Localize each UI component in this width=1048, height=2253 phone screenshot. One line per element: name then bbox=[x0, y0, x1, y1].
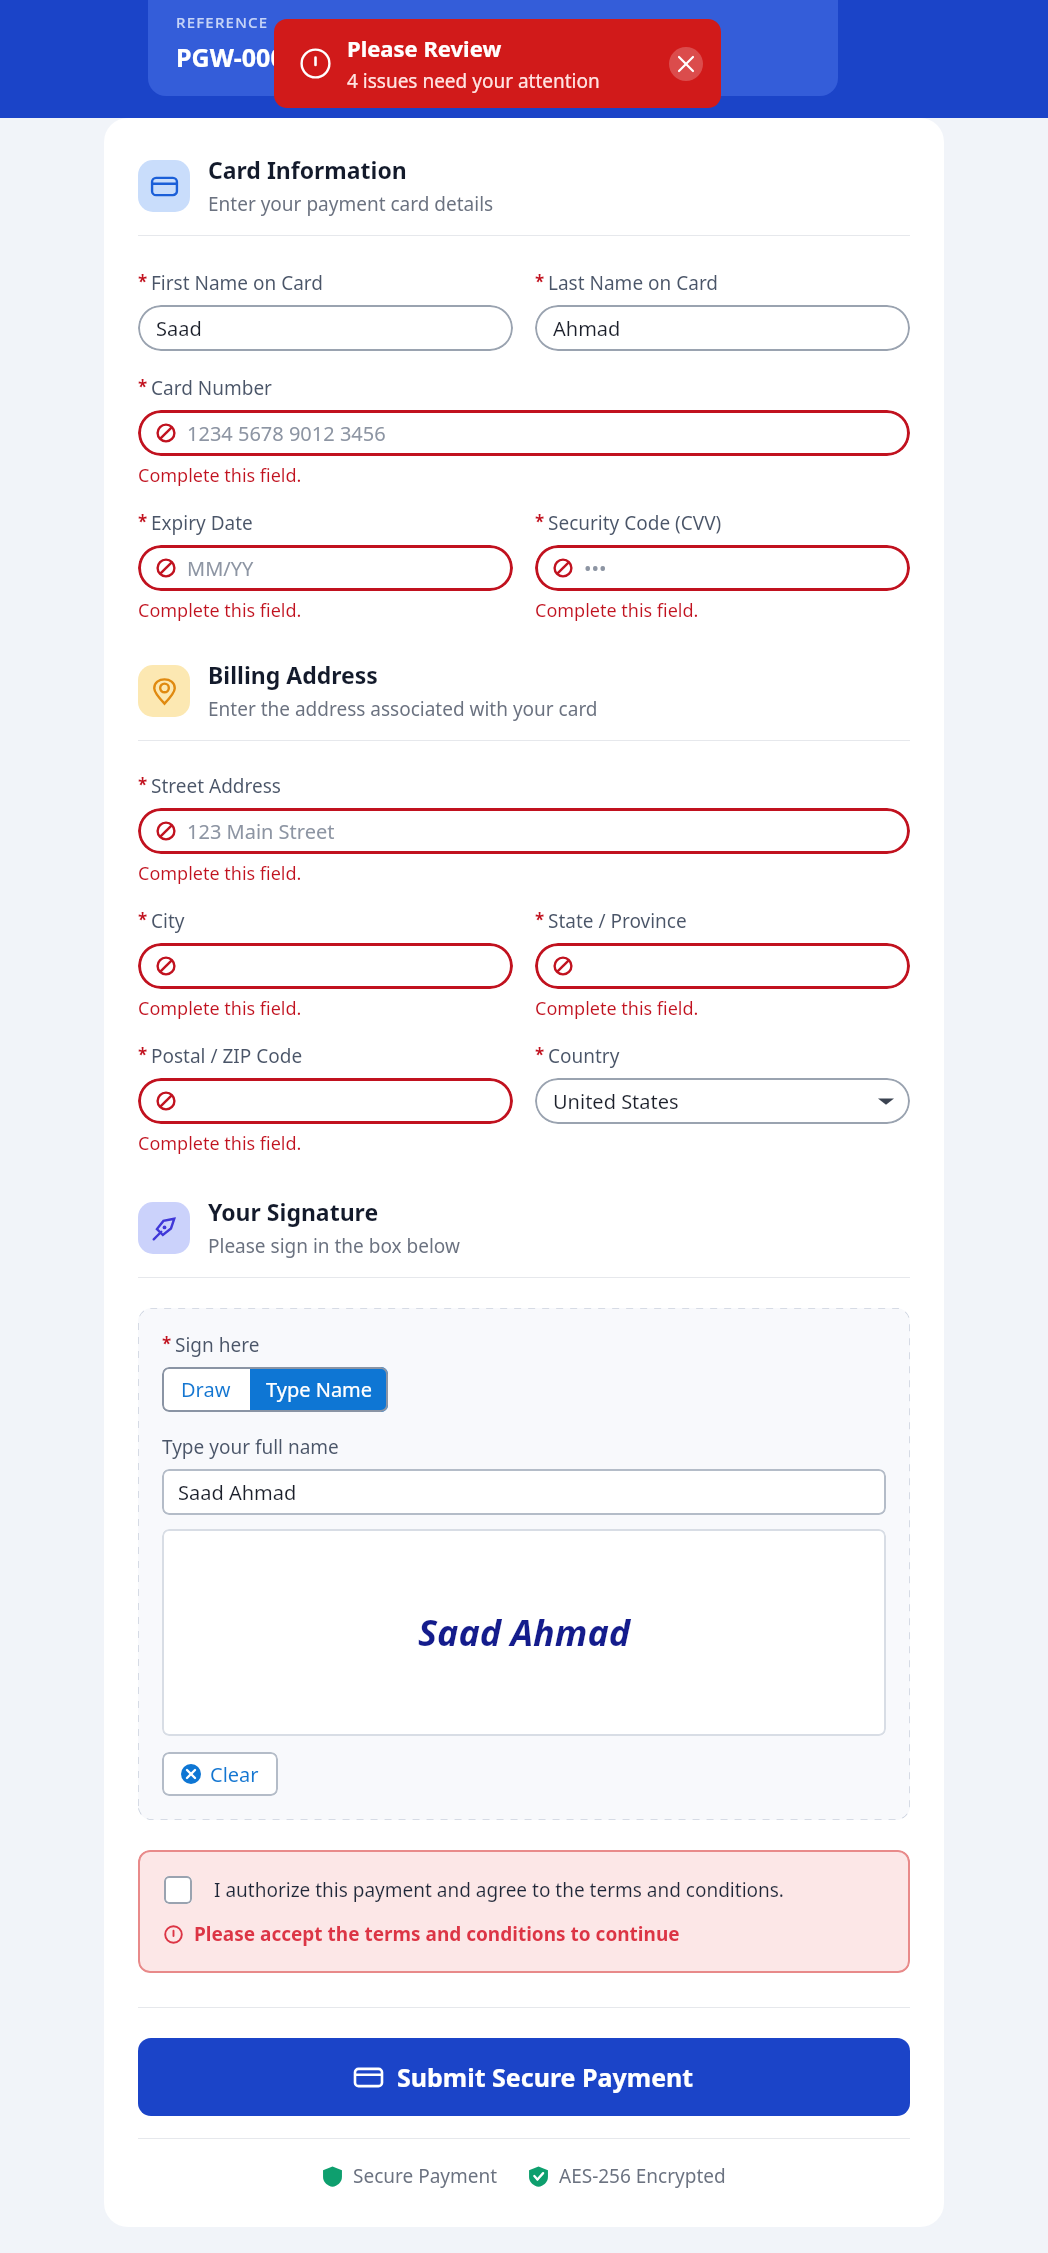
staticText: Type your full name bbox=[162, 1434, 339, 1460]
staticText: Enter your payment card details bbox=[208, 191, 494, 217]
staticText: Country bbox=[548, 1043, 620, 1069]
staticText: Complete this field. bbox=[138, 996, 302, 1021]
staticText: * bbox=[162, 1332, 172, 1355]
staticText: * bbox=[138, 270, 148, 293]
staticText: Submit Secure Payment bbox=[397, 2060, 694, 2094]
staticText: Postal / ZIP Code bbox=[151, 1043, 303, 1069]
button[interactable]: Dismiss bbox=[669, 47, 703, 81]
staticText: * bbox=[138, 375, 148, 398]
staticText: First Name on Card bbox=[151, 270, 324, 296]
button[interactable]: Submit Secure Payment bbox=[138, 2038, 910, 2116]
staticText: * bbox=[138, 773, 148, 796]
staticText: Last Name on Card bbox=[548, 270, 719, 296]
staticText: United States bbox=[553, 1088, 878, 1115]
staticText: Saad Ahmad bbox=[178, 1479, 297, 1506]
button[interactable]: United States bbox=[535, 1078, 910, 1124]
staticText: Saad Ahmad bbox=[418, 1608, 631, 1657]
staticText: 4 issues need your attention bbox=[347, 68, 600, 94]
staticText: AES-256 Encrypted bbox=[559, 2163, 726, 2189]
staticText: Expiry Date bbox=[151, 510, 253, 536]
button[interactable]: ••• bbox=[535, 545, 910, 591]
button[interactable]: I authorize this payment and agree to th… bbox=[138, 1850, 910, 1973]
staticText: State / Province bbox=[548, 908, 687, 934]
staticText: Clear bbox=[210, 1761, 259, 1788]
staticText: Billing Address bbox=[208, 659, 378, 690]
staticText: Type Name bbox=[266, 1376, 373, 1403]
staticText: Draw bbox=[181, 1376, 231, 1403]
button[interactable]: Ahmad bbox=[535, 305, 910, 351]
staticText: Security Code (CVV) bbox=[548, 510, 722, 536]
staticText: Complete this field. bbox=[138, 598, 302, 623]
button[interactable]: Clear bbox=[162, 1752, 278, 1796]
staticText: * bbox=[138, 1043, 148, 1066]
staticText: Saad bbox=[156, 315, 202, 342]
staticText: Complete this field. bbox=[535, 996, 699, 1021]
staticText: Please accept the terms and conditions t… bbox=[194, 1921, 680, 1947]
staticText: Please Review bbox=[347, 33, 502, 63]
button[interactable]: Saad Ahmad bbox=[162, 1469, 886, 1515]
staticText: Complete this field. bbox=[138, 861, 302, 886]
staticText: I authorize this payment and agree to th… bbox=[214, 1877, 784, 1903]
staticText: REFERENCE bbox=[176, 12, 269, 32]
staticText: Complete this field. bbox=[535, 598, 699, 623]
staticText: Sign here bbox=[175, 1332, 260, 1358]
staticText: 123 Main Street bbox=[187, 818, 335, 845]
staticText: * bbox=[535, 908, 545, 931]
button[interactable]: 123 Main Street bbox=[138, 808, 910, 854]
staticText: ••• bbox=[584, 555, 607, 582]
staticText: PGW-0000 bbox=[176, 40, 300, 74]
staticText: Complete this field. bbox=[138, 463, 302, 488]
staticText: * bbox=[138, 908, 148, 931]
staticText: Ahmad bbox=[553, 315, 621, 342]
staticText: MM/YY bbox=[187, 555, 254, 582]
staticText: Complete this field. bbox=[138, 1131, 302, 1156]
button[interactable]: Saad bbox=[138, 305, 513, 351]
staticText: Card Information bbox=[208, 154, 407, 185]
button[interactable]: Type Name bbox=[250, 1367, 388, 1412]
staticText: Please sign in the box below bbox=[208, 1233, 460, 1259]
button[interactable] bbox=[535, 943, 910, 989]
button[interactable]: Please Review bbox=[274, 19, 721, 108]
button[interactable]: Draw bbox=[162, 1367, 250, 1412]
staticText: Your Signature bbox=[208, 1196, 379, 1227]
staticText: * bbox=[535, 270, 545, 293]
staticText: * bbox=[535, 1043, 545, 1066]
button[interactable] bbox=[138, 943, 513, 989]
button[interactable] bbox=[138, 1078, 513, 1124]
staticText: * bbox=[138, 510, 148, 533]
button[interactable]: 1234 5678 9012 3456 bbox=[138, 410, 910, 456]
staticText: Enter the address associated with your c… bbox=[208, 696, 598, 722]
staticText: Street Address bbox=[151, 773, 281, 799]
staticText: * bbox=[535, 510, 545, 533]
staticText: Card Number bbox=[151, 375, 272, 401]
staticText: City bbox=[151, 908, 185, 934]
staticText: 1234 5678 9012 3456 bbox=[187, 420, 386, 447]
staticText: Secure Payment bbox=[353, 2163, 498, 2189]
button[interactable]: MM/YY bbox=[138, 545, 513, 591]
